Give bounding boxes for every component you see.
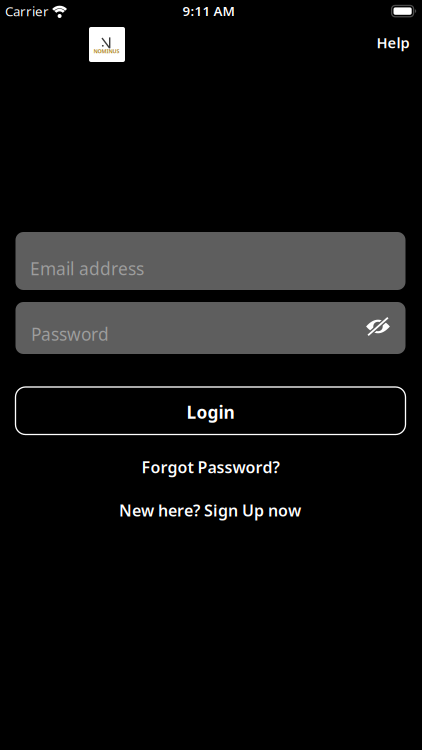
staticText: Forgot Password?	[142, 456, 280, 478]
button[interactable]: Show password	[365, 317, 390, 336]
staticText: NOMINUS	[93, 48, 119, 55]
staticText: Password	[31, 322, 109, 345]
staticText: Login	[186, 400, 234, 423]
staticText: Help	[376, 33, 409, 52]
staticText: Email address	[30, 257, 144, 280]
staticText: Carrier	[5, 2, 49, 20]
staticText: New here? Sign Up now	[119, 500, 301, 521]
button[interactable]: Forgot Password?	[142, 456, 280, 478]
button[interactable]: Help	[376, 33, 409, 52]
button[interactable]: Login	[15, 387, 405, 434]
button[interactable]: New here? Sign Up now	[119, 500, 301, 521]
staticText: 9:11 AM	[182, 2, 234, 20]
